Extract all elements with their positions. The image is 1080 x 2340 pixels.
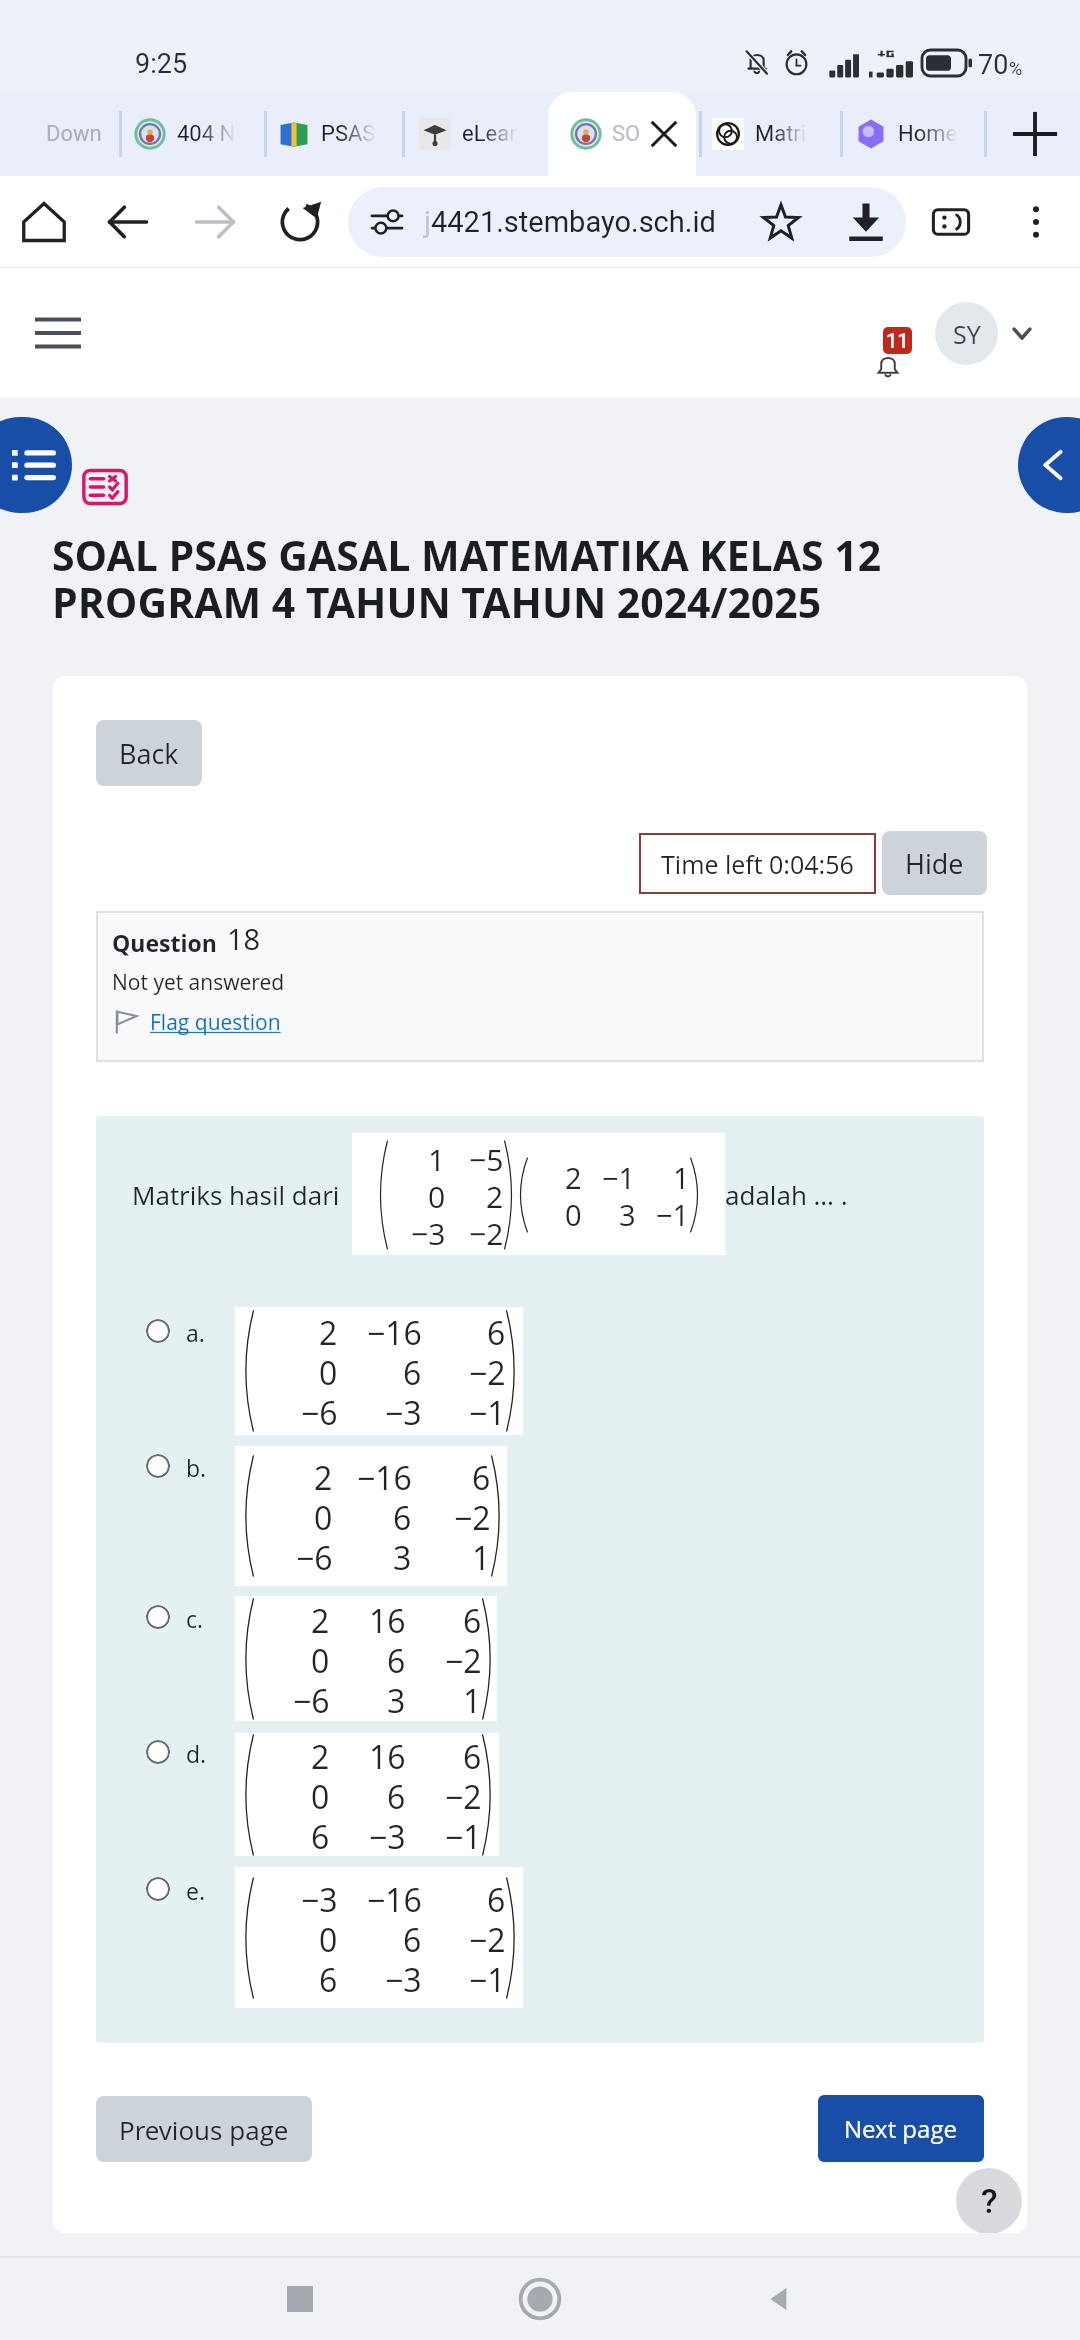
staticText: 0 bbox=[565, 1195, 582, 1232]
staticText: 1 bbox=[428, 1139, 446, 1176]
button[interactable]: Notifications bbox=[858, 296, 918, 356]
button[interactable]: Down bbox=[20, 92, 110, 176]
staticText: −2 bbox=[445, 1639, 482, 1679]
staticText: 0 bbox=[314, 1496, 333, 1536]
staticText: 4421.stembayo.sch.id bbox=[431, 205, 716, 239]
staticText: Time left 0:04:56 bbox=[661, 847, 854, 881]
staticText: b. bbox=[186, 1452, 207, 1483]
staticText: 1 bbox=[472, 1536, 491, 1576]
button[interactable]: Home bbox=[855, 92, 958, 176]
staticText: Down bbox=[46, 121, 102, 147]
staticText: ? bbox=[981, 2181, 998, 2221]
staticText: 0 bbox=[319, 1351, 338, 1391]
staticText: −3 bbox=[301, 1878, 338, 1918]
staticText: Home bbox=[898, 121, 958, 147]
staticText: SOAL PSAS GASAL MATEMATIKA KELAS 12 PROG… bbox=[52, 527, 882, 630]
button[interactable]: Previous page bbox=[96, 2096, 312, 2162]
staticText: −3 bbox=[385, 1391, 422, 1431]
staticText: −6 bbox=[301, 1391, 338, 1431]
staticText: d. bbox=[186, 1738, 207, 1769]
button[interactable]: Home bbox=[490, 2258, 590, 2340]
staticText: 6 bbox=[387, 1775, 406, 1815]
staticText: −1 bbox=[656, 1195, 690, 1232]
button[interactable]: j bbox=[348, 187, 906, 257]
button[interactable]: eLear bbox=[419, 92, 517, 176]
staticText: −16 bbox=[367, 1878, 422, 1918]
button[interactable]: Profile bbox=[921, 192, 981, 252]
staticText: −2 bbox=[469, 1351, 506, 1391]
button[interactable]: a. bbox=[96, 1307, 984, 1435]
button[interactable]: Reload bbox=[270, 192, 330, 252]
staticText: 2 bbox=[311, 1599, 330, 1639]
staticText: −3 bbox=[385, 1958, 422, 1998]
staticText: −1 bbox=[445, 1815, 482, 1855]
button[interactable]: More options bbox=[1006, 192, 1066, 252]
button[interactable]: Next page bbox=[818, 2095, 984, 2162]
button[interactable]: Quiz navigation bbox=[0, 417, 72, 513]
staticText: SO bbox=[612, 121, 641, 147]
staticText: Not yet answered bbox=[112, 968, 285, 997]
staticText: 0 bbox=[311, 1775, 330, 1815]
staticText: −6 bbox=[296, 1536, 333, 1576]
button[interactable]: Downloads bbox=[836, 192, 896, 252]
button[interactable]: Forward bbox=[185, 192, 245, 252]
button[interactable]: d. bbox=[96, 1733, 984, 1856]
button[interactable]: Back bbox=[730, 2258, 830, 2340]
button[interactable]: Help bbox=[956, 2168, 1022, 2233]
staticText: 70 bbox=[978, 49, 1009, 81]
staticText: a. bbox=[186, 1317, 205, 1348]
staticText: % bbox=[1009, 58, 1023, 79]
staticText: 6 bbox=[463, 1599, 482, 1639]
button[interactable]: Recent apps bbox=[250, 2258, 350, 2340]
staticText: 6 bbox=[472, 1456, 491, 1496]
staticText: 2 bbox=[486, 1176, 504, 1213]
staticText: 2 bbox=[311, 1735, 330, 1775]
staticText: 6 bbox=[319, 1958, 338, 1998]
staticText: Flag question bbox=[150, 1008, 281, 1037]
staticText: −1 bbox=[469, 1391, 506, 1431]
button[interactable]: Matri bbox=[712, 92, 807, 176]
button[interactable]: SY bbox=[935, 302, 998, 365]
button[interactable]: Menu bbox=[22, 297, 94, 369]
staticText: 0 bbox=[311, 1639, 330, 1679]
staticText: 11 bbox=[886, 329, 909, 352]
button[interactable]: Close tab bbox=[636, 106, 692, 162]
staticText: Matri bbox=[755, 121, 807, 147]
button[interactable]: Expand user menu bbox=[1004, 315, 1040, 351]
staticText: 6 bbox=[487, 1878, 506, 1918]
staticText: −1 bbox=[602, 1158, 636, 1195]
button[interactable]: c. bbox=[96, 1596, 984, 1721]
button[interactable]: Show navigation bbox=[1018, 417, 1080, 513]
staticText: Back bbox=[119, 735, 179, 772]
button[interactable]: Home bbox=[14, 192, 74, 252]
button[interactable]: PSAS bbox=[278, 92, 376, 176]
staticText: 3 bbox=[619, 1195, 636, 1232]
button[interactable]: e. bbox=[96, 1867, 984, 2008]
staticText: 6 bbox=[403, 1918, 422, 1958]
button[interactable]: b. bbox=[96, 1446, 984, 1586]
button[interactable]: 404 N bbox=[134, 92, 236, 176]
staticText: e. bbox=[186, 1875, 206, 1906]
button[interactable]: Back bbox=[98, 192, 158, 252]
button[interactable]: SO bbox=[548, 92, 696, 176]
staticText: −2 bbox=[454, 1496, 491, 1536]
staticText: −3 bbox=[411, 1213, 446, 1250]
button[interactable]: Flag question bbox=[112, 1007, 281, 1037]
staticText: 0 bbox=[428, 1176, 446, 1213]
button[interactable]: New tab bbox=[1004, 103, 1066, 165]
button[interactable]: Hide bbox=[882, 831, 987, 895]
staticText: 6 bbox=[311, 1815, 330, 1855]
staticText: −16 bbox=[367, 1311, 422, 1351]
staticText: −6 bbox=[293, 1679, 330, 1719]
staticText: 1 bbox=[673, 1158, 690, 1195]
staticText: 404 N bbox=[177, 121, 236, 147]
staticText: −2 bbox=[445, 1775, 482, 1815]
staticText: 6 bbox=[387, 1639, 406, 1679]
staticText: 2 bbox=[314, 1456, 333, 1496]
staticText: −3 bbox=[369, 1815, 406, 1855]
button[interactable]: Back bbox=[96, 720, 202, 786]
staticText: −2 bbox=[469, 1918, 506, 1958]
staticText: 18 bbox=[227, 919, 261, 958]
button[interactable]: Bookmark bbox=[751, 192, 811, 252]
staticText: 6 bbox=[463, 1735, 482, 1775]
